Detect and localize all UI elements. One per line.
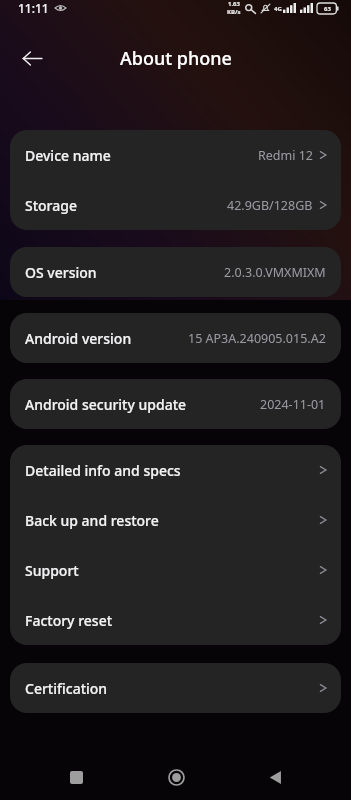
staticText: 42.9GB/128GB — [227, 197, 313, 214]
staticText: Storage — [25, 196, 77, 215]
button[interactable]: Storage — [10, 180, 341, 230]
staticText: Android security update — [25, 395, 187, 414]
button[interactable]: Home — [152, 754, 200, 800]
staticText: Certification — [25, 679, 108, 698]
button[interactable]: Back — [251, 754, 299, 800]
staticText: OS version — [25, 263, 97, 282]
button[interactable]: Factory reset — [10, 595, 341, 645]
button[interactable]: Recents — [52, 754, 100, 800]
staticText: Support — [25, 561, 79, 580]
button[interactable]: Android version — [10, 313, 341, 363]
staticText: 11:11 — [18, 0, 49, 16]
staticText: Back up and restore — [25, 511, 159, 530]
button[interactable]: Back — [10, 36, 54, 80]
staticText: Redmi 12 — [258, 147, 313, 164]
staticText: Android version — [25, 329, 132, 348]
button[interactable]: OS version — [10, 247, 341, 297]
staticText: 63 — [324, 5, 331, 13]
staticText: Detailed info and specs — [25, 461, 181, 480]
staticText: About phone — [120, 46, 232, 71]
button[interactable]: Device name — [10, 130, 341, 180]
staticText: 1.63 — [228, 0, 240, 8]
button[interactable]: Support — [10, 545, 341, 595]
button[interactable]: Certification — [10, 663, 341, 713]
staticText: KB/s — [227, 8, 241, 16]
button[interactable]: Android security update — [10, 379, 341, 429]
button[interactable]: Detailed info and specs — [10, 445, 341, 495]
staticText: 4G — [274, 5, 282, 13]
staticText: 2.0.3.0.VMXMIXM — [224, 264, 326, 281]
button[interactable]: Back up and restore — [10, 495, 341, 545]
staticText: 2024-11-01 — [260, 396, 326, 413]
staticText: Factory reset — [25, 611, 113, 630]
staticText: 15 AP3A.240905.015.A2 — [188, 330, 326, 347]
staticText: Device name — [25, 146, 111, 165]
